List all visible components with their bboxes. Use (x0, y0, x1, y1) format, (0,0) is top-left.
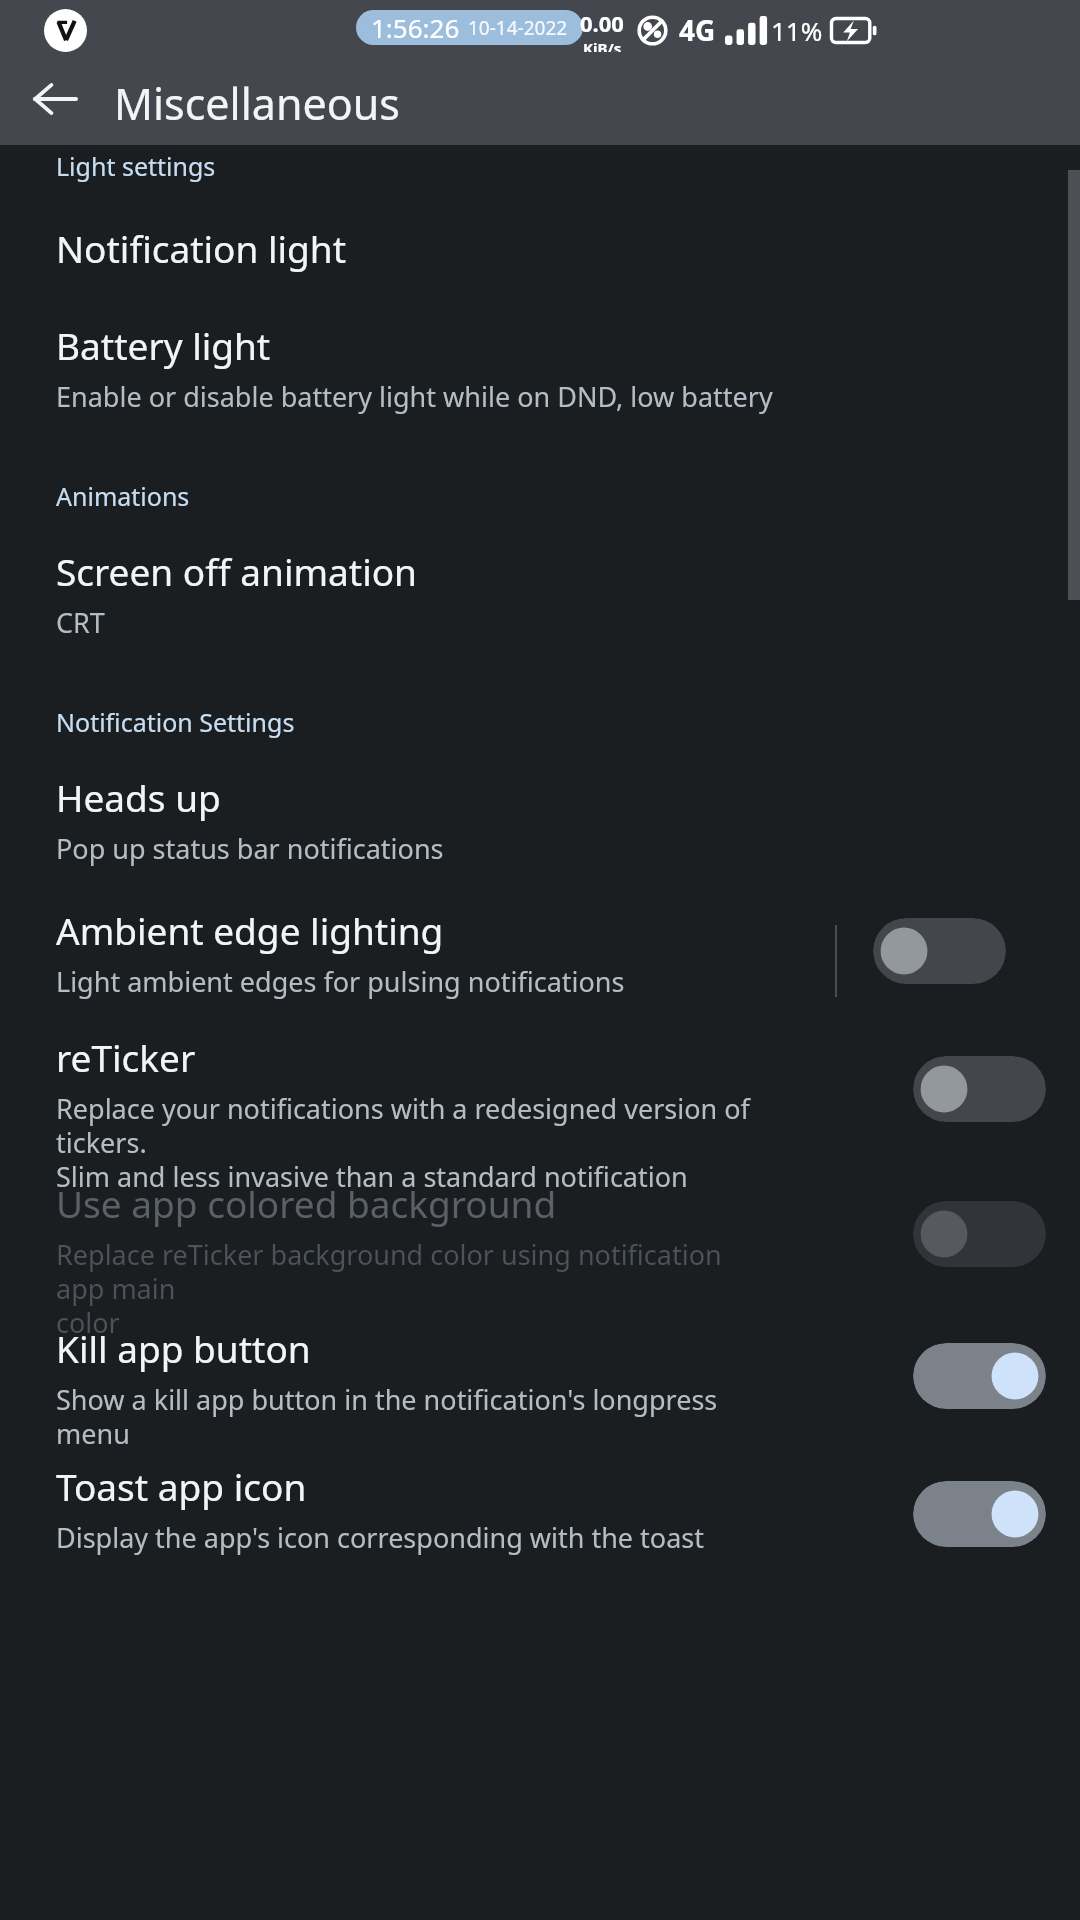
staticText: 10-14-2022 (468, 15, 568, 41)
staticText: Kill app button (56, 1323, 311, 1373)
staticText: reTicker (56, 1032, 196, 1082)
staticText: Pop up status bar notifications (56, 830, 444, 867)
staticText: Toast app icon (56, 1461, 307, 1511)
staticText: Ambient edge lighting (56, 905, 444, 955)
staticText: Miscellaneous (114, 74, 400, 133)
button[interactable]: Kill app button (0, 1323, 1080, 1452)
staticText: Replace reTicker background color using … (56, 1236, 750, 1341)
staticText: 0.00 (580, 8, 624, 38)
button[interactable]: reTicker (0, 1032, 1080, 1195)
staticText: Use app colored background (56, 1178, 557, 1228)
button[interactable]: Toast app icon (913, 1481, 1046, 1547)
button[interactable]: Kill app button (913, 1343, 1046, 1409)
staticText: Display the app's icon corresponding wit… (56, 1519, 705, 1556)
staticText: Notification Settings (56, 705, 295, 739)
staticText: Light ambient edges for pulsing notifica… (56, 963, 625, 1000)
staticText: Enable or disable battery light while on… (56, 378, 773, 415)
button[interactable]: Toast app icon (0, 1461, 1080, 1556)
staticText: Show a kill app button in the notificati… (56, 1381, 750, 1452)
button[interactable]: Use app colored background (0, 1178, 1080, 1341)
staticText: 4G (679, 11, 716, 49)
button[interactable]: Ambient edge lighting (0, 905, 1080, 1000)
button[interactable]: reTicker (913, 1056, 1046, 1122)
staticText: KiB/s (583, 38, 622, 52)
staticText: 1:56:26 (371, 10, 460, 45)
staticText: Notification light (56, 223, 347, 273)
button[interactable]: Battery light (0, 320, 1080, 415)
staticText: Heads up (56, 772, 221, 822)
button[interactable]: Back (24, 68, 86, 130)
staticText: CRT (56, 604, 105, 641)
staticText: 11% (771, 13, 823, 48)
button[interactable]: Notification light (0, 212, 1080, 284)
button[interactable]: Heads up (0, 772, 1080, 867)
button[interactable]: Screen off animation (0, 546, 1080, 641)
staticText: Screen off animation (56, 546, 417, 596)
staticText: Light settings (56, 149, 216, 183)
staticText: Battery light (56, 320, 271, 370)
button[interactable]: Ambient edge lighting (873, 918, 1006, 984)
button[interactable]: Use app colored background (913, 1201, 1046, 1267)
staticText: Animations (56, 479, 190, 513)
staticText: Replace your notifications with a redesi… (56, 1090, 750, 1195)
